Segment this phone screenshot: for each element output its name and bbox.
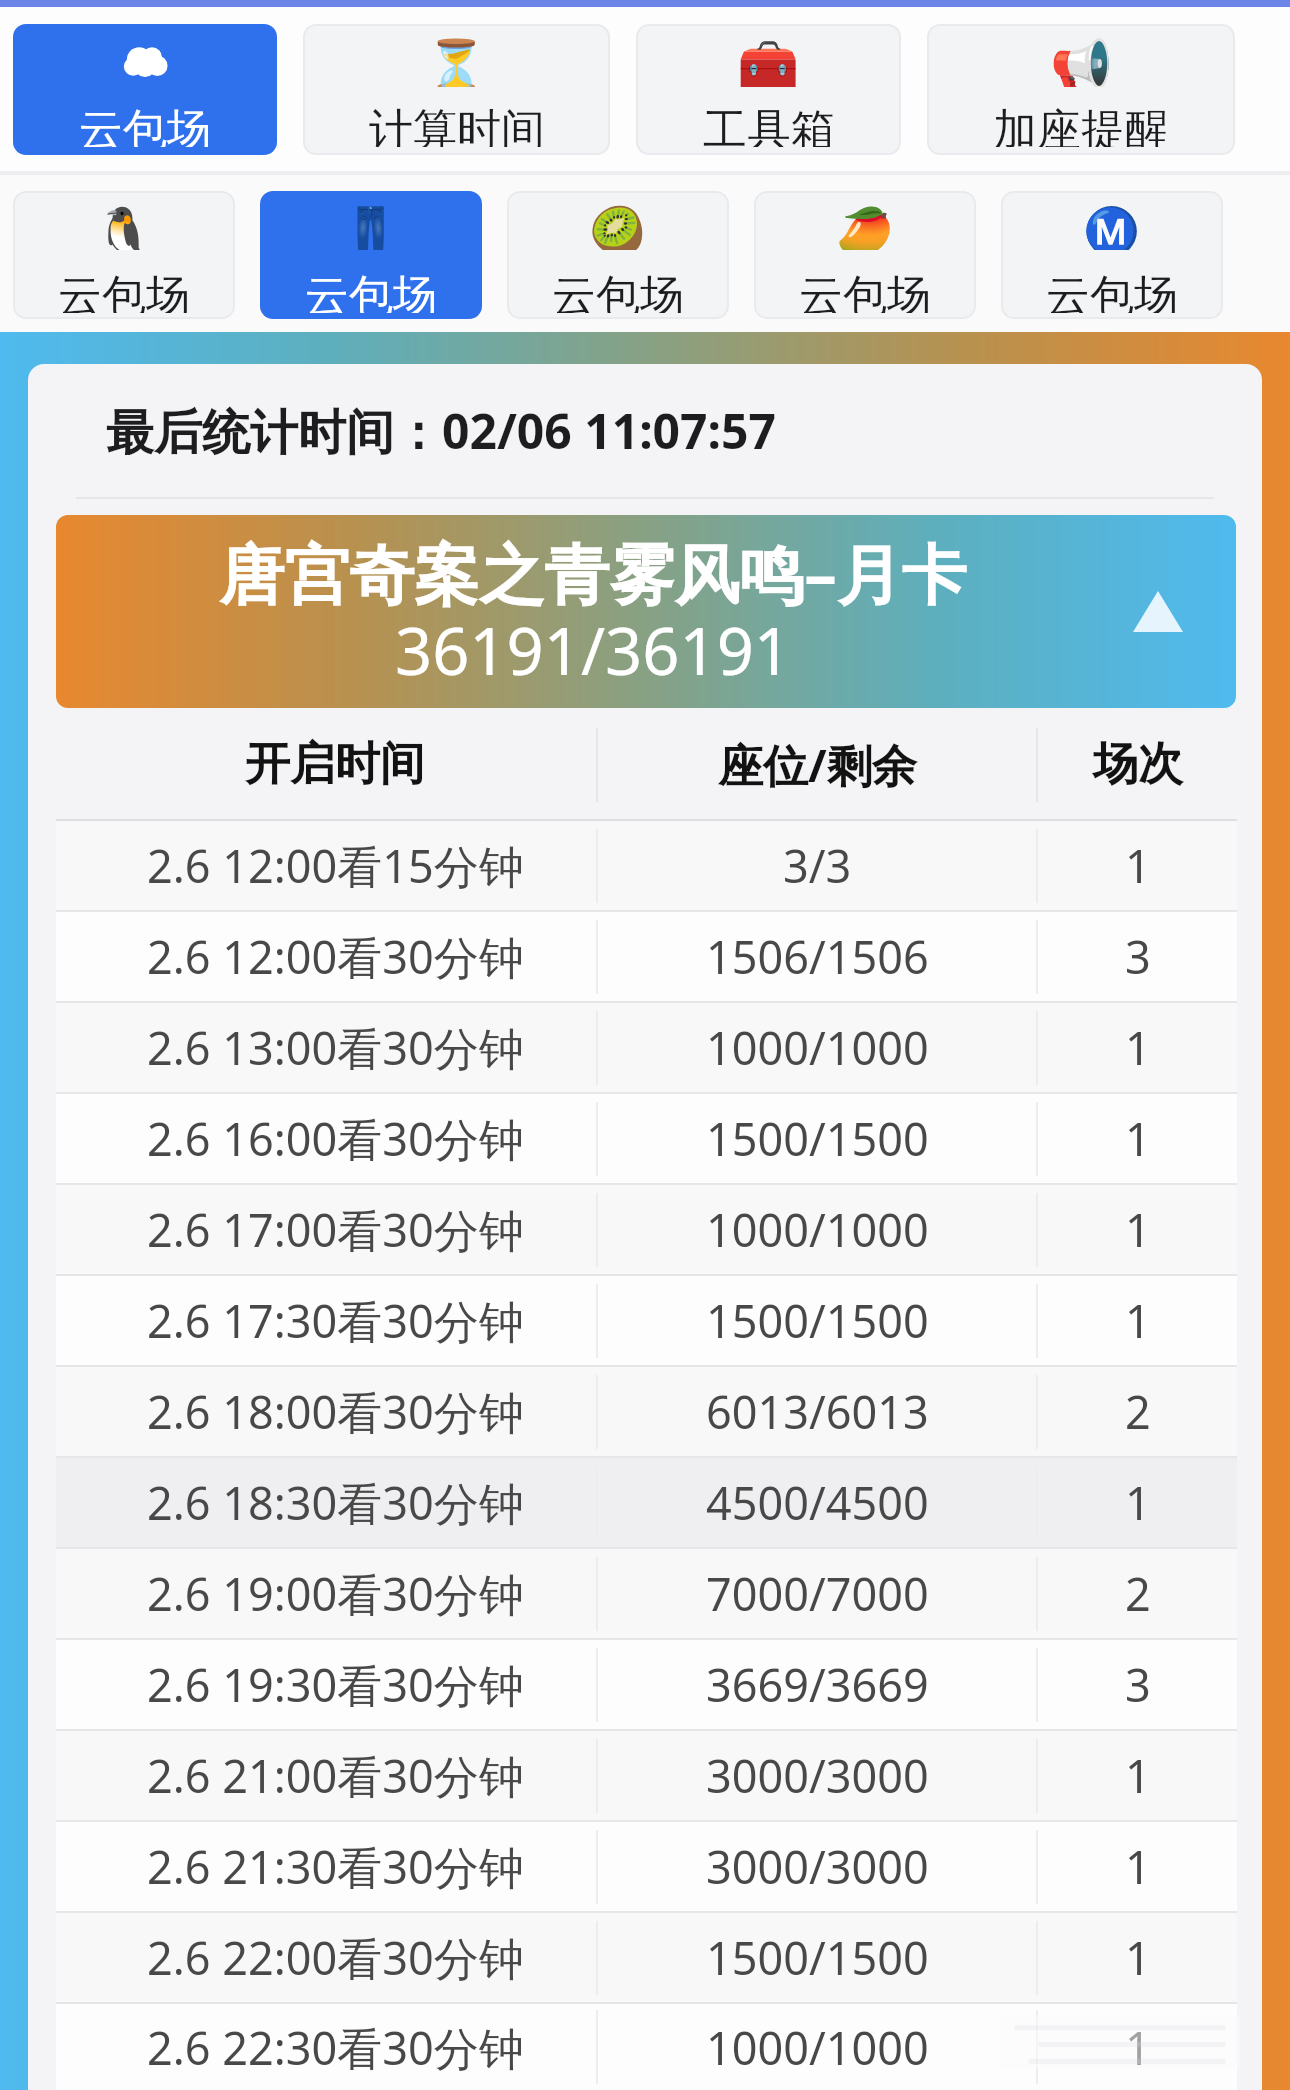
staticText: 2.6 16:00看30分钟 [147,1108,524,1169]
button[interactable]: 📢 [927,24,1235,155]
button[interactable]: 2.6 22:30看30分钟 [56,2004,1237,2090]
button[interactable]: 2.6 22:00看30分钟 [56,1913,1237,2002]
button[interactable]: ⏳ [303,24,610,155]
staticText: 计算时间 [369,103,545,147]
staticText: 最后统计时间：02/06 11:07:57 [106,398,776,464]
button[interactable]: 👖 [260,191,482,319]
staticText: 2.6 22:30看30分钟 [147,2017,524,2078]
staticText: 2.6 22:00看30分钟 [147,1927,524,1988]
staticText: 工具箱 [703,103,835,147]
staticText: 云包场 [1046,269,1178,313]
staticText: 1 [1125,1927,1151,1988]
staticText: ⏳ [425,37,488,87]
button[interactable]: 云包场 [13,24,277,155]
button[interactable]: 2.6 19:00看30分钟 [56,1549,1237,1638]
staticText: 2.6 17:30看30分钟 [147,1290,524,1351]
staticText: 1 [1125,1199,1151,1260]
staticText: 3000/3000 [706,1745,929,1806]
staticText: 1500/1500 [706,1290,929,1351]
other: Collapse [1133,591,1183,632]
staticText: 3/3 [783,835,852,896]
staticText: 座位/剩余 [718,734,917,795]
button[interactable]: 🥝 [507,191,729,319]
staticText: 云包场 [58,269,190,313]
button[interactable]: 🧰 [636,24,901,155]
staticText: 2.6 17:00看30分钟 [147,1199,524,1260]
staticText: 云包场 [79,103,211,147]
staticText: 1000/1000 [706,2017,929,2078]
button[interactable]: 2.6 21:30看30分钟 [56,1822,1237,1911]
button[interactable]: 2.6 19:30看30分钟 [56,1640,1237,1729]
staticText: 3 [1125,926,1151,987]
staticText: 3669/3669 [706,1654,929,1715]
staticText: 1 [1125,1108,1151,1169]
staticText: 2.6 13:00看30分钟 [147,1017,524,1078]
button[interactable]: 2.6 16:00看30分钟 [56,1094,1237,1183]
staticText: 1 [1125,2017,1151,2078]
staticText: 2.6 21:00看30分钟 [147,1745,524,1806]
staticText: 2.6 18:30看30分钟 [147,1472,524,1533]
staticText: 2.6 21:30看30分钟 [147,1836,524,1897]
staticText: 唐宫奇案之青雾风鸣–月卡 36191/36191 [219,529,967,694]
button[interactable]: 2.6 12:00看15分钟 [56,821,1237,910]
staticText: 1 [1125,1836,1151,1897]
staticText: 🥝 [589,204,647,250]
staticText: 2.6 12:00看30分钟 [147,926,524,987]
staticText: 2.6 19:30看30分钟 [147,1654,524,1715]
staticText: 1000/1000 [706,1017,929,1078]
staticText: 2.6 18:00看30分钟 [147,1381,524,1442]
button[interactable]: 2.6 12:00看30分钟 [56,912,1237,1001]
staticText: 👖 [342,204,400,250]
staticText: 🥭 [836,204,894,250]
staticText: 1000/1000 [706,1199,929,1260]
staticText: 加座提醒 [993,103,1169,147]
staticText: 场次 [1093,736,1183,793]
button[interactable]: 🥭 [754,191,976,319]
button[interactable]: Ⓜ️ [1001,191,1223,319]
staticText: 1 [1125,1290,1151,1351]
staticText: 1500/1500 [706,1108,929,1169]
staticText: 🐧 [95,204,153,250]
button[interactable]: 2.6 13:00看30分钟 [56,1003,1237,1092]
staticText: 6013/6013 [706,1381,929,1442]
staticText: 1506/1506 [706,926,929,987]
staticText: 开启时间 [245,736,425,793]
staticText: 2 [1125,1381,1151,1442]
staticText: 4500/4500 [706,1472,929,1533]
staticText: 1 [1125,835,1151,896]
staticText: 2.6 19:00看30分钟 [147,1563,524,1624]
staticText: 1500/1500 [706,1927,929,1988]
staticText: 1 [1125,1017,1151,1078]
button[interactable]: 2.6 18:00看30分钟 [56,1367,1237,1456]
staticText: 云包场 [799,269,931,313]
button[interactable]: 2.6 18:30看30分钟 [56,1458,1237,1547]
button[interactable]: 2.6 17:30看30分钟 [56,1276,1237,1365]
button[interactable]: 🐧 [13,191,235,319]
staticText: 云包场 [552,269,684,313]
staticText: 云包场 [305,269,437,313]
button[interactable]: 2.6 17:00看30分钟 [56,1185,1237,1274]
staticText: 2 [1125,1563,1151,1624]
staticText: 📢 [1050,37,1113,87]
staticText: 🧰 [737,37,800,87]
staticText: 3 [1125,1654,1151,1715]
staticText: 1 [1125,1472,1151,1533]
button[interactable]: 2.6 21:00看30分钟 [56,1731,1237,1820]
staticText: 7000/7000 [706,1563,929,1624]
staticText: 3000/3000 [706,1836,929,1897]
button[interactable]: 唐宫奇案之青雾风鸣–月卡 36191/36191 [56,515,1236,708]
staticText: 1 [1125,1745,1151,1806]
staticText: 2.6 12:00看15分钟 [147,835,524,896]
staticText: Ⓜ️ [1083,204,1141,250]
